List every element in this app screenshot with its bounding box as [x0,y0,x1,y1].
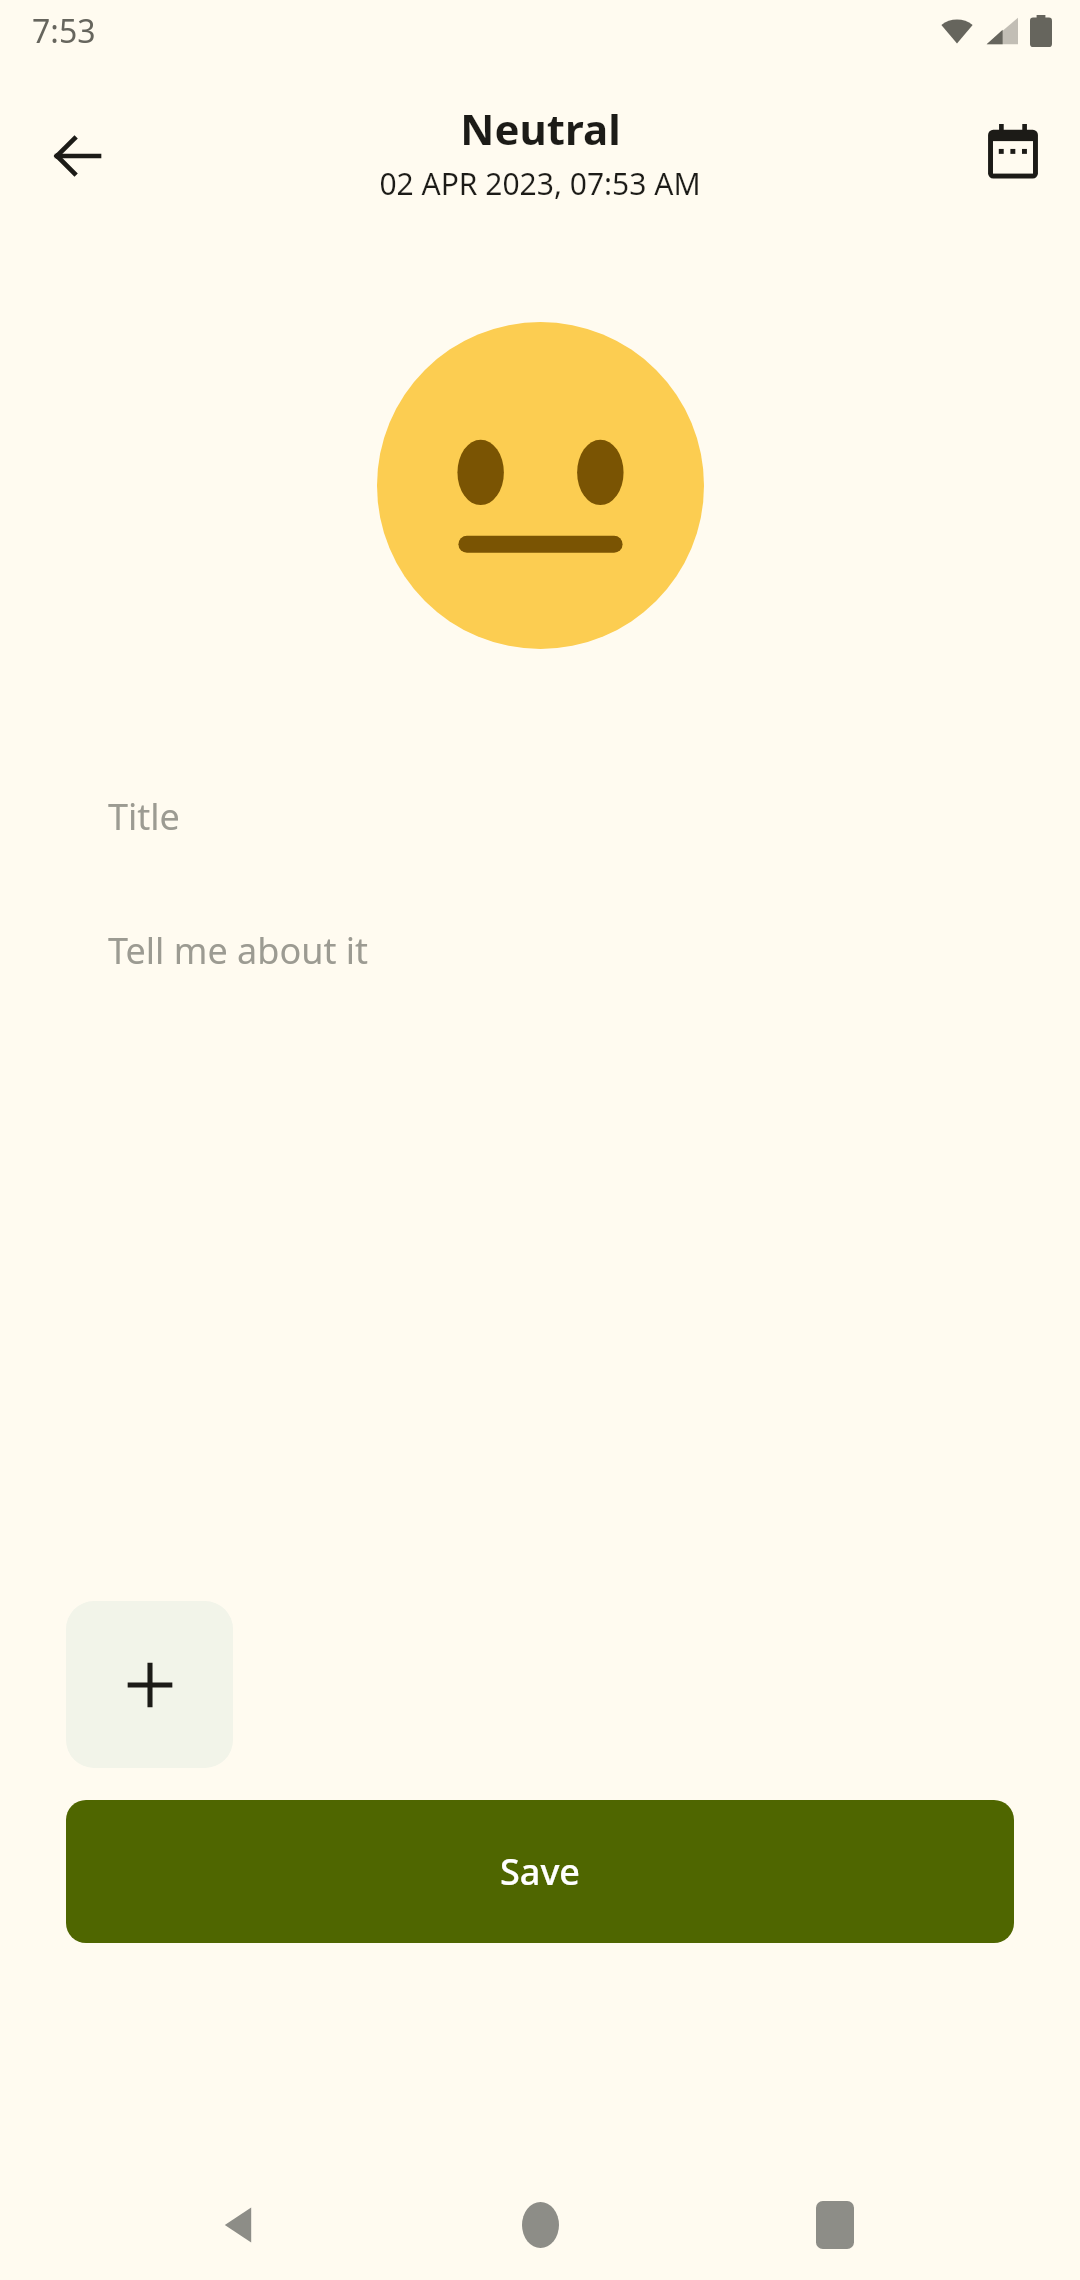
staticText: 7:53 [32,9,96,53]
button[interactable]: Back [190,2175,290,2275]
staticText: Tell me about it [108,926,369,975]
button[interactable]: Tell me about it [0,872,1080,1028]
button[interactable]: Back [30,108,126,204]
button[interactable]: Home [490,2175,590,2275]
staticText: Neutral [460,100,621,157]
button[interactable]: Add image [66,1601,233,1768]
button[interactable]: Pick date [968,108,1058,198]
staticText: 02 APR 2023, 07:53 AM [379,163,701,204]
staticText: Save [500,1847,581,1896]
button[interactable]: Recent apps [785,2175,885,2275]
staticText: Title [108,792,180,841]
button[interactable]: Save [66,1800,1014,1943]
button[interactable]: Title [0,760,1080,872]
